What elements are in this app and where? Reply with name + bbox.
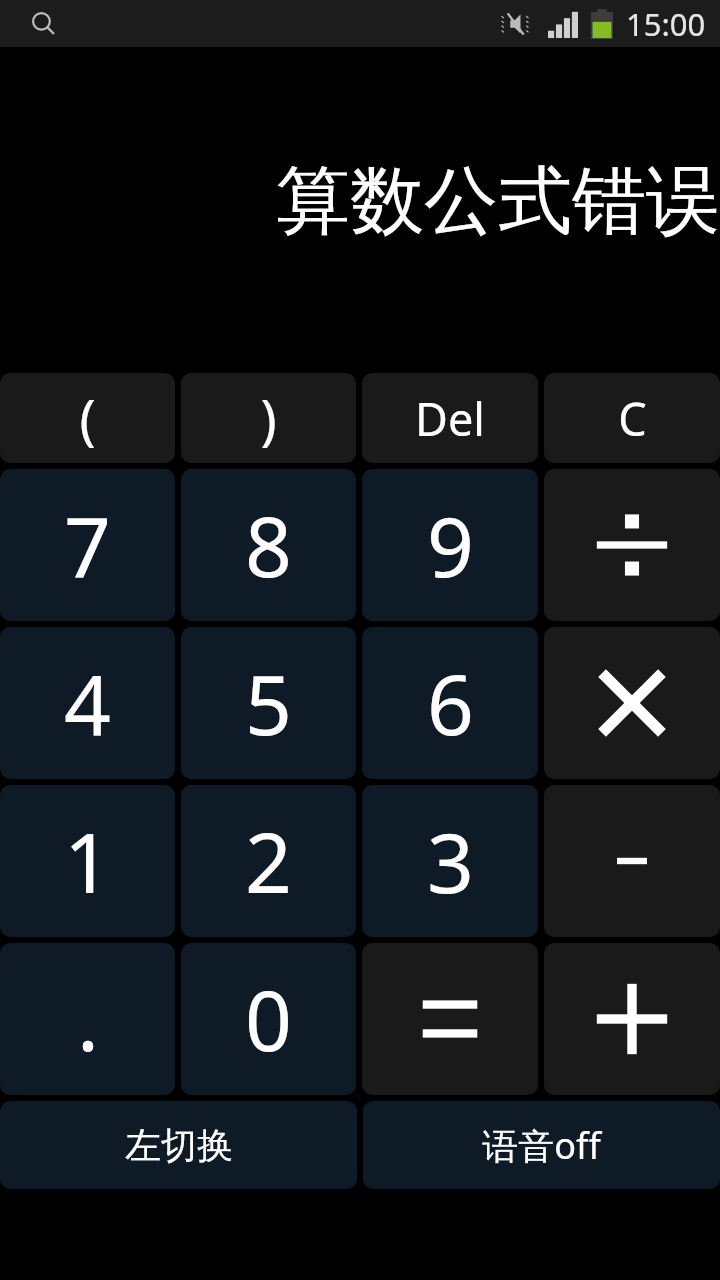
staticText: 4 xyxy=(64,647,111,759)
staticText: 1 xyxy=(64,805,111,917)
staticText: Del xyxy=(415,388,485,449)
staticText: 5 xyxy=(245,647,292,759)
button[interactable]: Multiply xyxy=(544,627,720,779)
staticText: . xyxy=(77,963,99,1075)
button[interactable]: 8 xyxy=(181,469,356,621)
button[interactable]: Minus xyxy=(544,785,720,937)
button[interactable]: 2 xyxy=(181,785,356,937)
staticText: ) xyxy=(260,381,277,455)
staticText: 15:00 xyxy=(626,3,706,45)
button[interactable]: Del xyxy=(362,373,538,463)
staticText: 9 xyxy=(427,489,474,601)
button[interactable]: Divide xyxy=(544,469,720,621)
button[interactable]: 4 xyxy=(0,627,175,779)
staticText: 0 xyxy=(245,963,292,1075)
staticText: ( xyxy=(79,381,96,455)
button[interactable]: 6 xyxy=(362,627,538,779)
button[interactable]: 9 xyxy=(362,469,538,621)
staticText: 8 xyxy=(245,489,292,601)
button[interactable]: ( xyxy=(0,373,175,463)
staticText: 左切换 xyxy=(125,1123,233,1168)
button[interactable]: 3 xyxy=(362,785,538,937)
button[interactable]: 5 xyxy=(181,627,356,779)
button[interactable]: . xyxy=(0,943,175,1095)
staticText: 算数公式错误 xyxy=(0,155,720,248)
button[interactable]: 左切换 xyxy=(0,1101,357,1189)
button[interactable]: Equals xyxy=(362,943,538,1095)
button[interactable]: C xyxy=(544,373,720,463)
staticText: 3 xyxy=(427,805,474,917)
staticText: 7 xyxy=(64,489,111,601)
button[interactable]: Plus xyxy=(544,943,720,1095)
staticText: 2 xyxy=(245,805,292,917)
staticText: 语音off xyxy=(482,1121,601,1170)
button[interactable]: 7 xyxy=(0,469,175,621)
button[interactable]: ) xyxy=(181,373,356,463)
button[interactable]: 0 xyxy=(181,943,356,1095)
staticText: 6 xyxy=(427,647,474,759)
other: Search xyxy=(30,11,56,37)
button[interactable]: 1 xyxy=(0,785,175,937)
button[interactable]: 语音off xyxy=(363,1101,720,1189)
staticText: C xyxy=(618,388,647,449)
